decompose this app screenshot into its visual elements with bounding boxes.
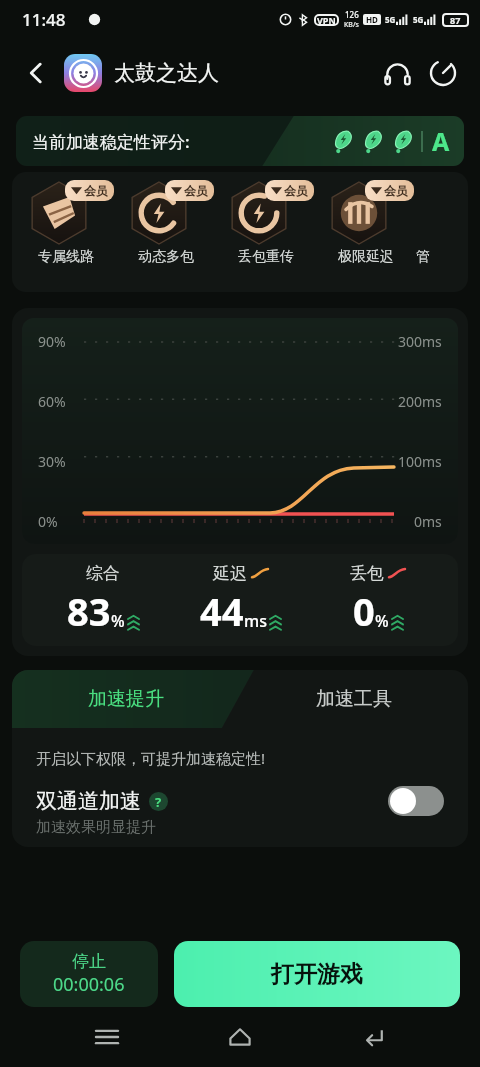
staticText: 00:00:06 <box>53 972 125 997</box>
staticText: 会员 <box>84 183 108 198</box>
staticText: A <box>432 124 450 158</box>
button[interactable]: Home <box>214 1011 266 1063</box>
button[interactable]: 双通道加速 <box>36 786 444 816</box>
button[interactable]: 打开游戏 <box>174 941 460 1007</box>
staticText: 100ms <box>398 452 442 471</box>
button[interactable]: 会员 <box>316 180 416 266</box>
staticText: 加速效果明显提升 <box>36 818 156 837</box>
staticText: 11:48 <box>22 8 66 31</box>
staticText: 丢包 <box>350 563 384 584</box>
staticText: 会员 <box>384 183 408 198</box>
button[interactable]: Back <box>14 51 58 95</box>
staticText: 延迟 <box>213 563 247 584</box>
button[interactable]: 会员 <box>16 180 116 266</box>
button[interactable]: 当前加速稳定性评分: <box>16 116 464 166</box>
staticText: 60% <box>38 392 66 411</box>
button[interactable]: 加速提升 <box>12 670 240 728</box>
button[interactable]: 会员 <box>216 180 316 266</box>
staticText: 管 <box>416 248 430 266</box>
staticText: 126 <box>345 9 359 20</box>
staticText: ? <box>155 793 162 811</box>
button[interactable]: 综合 <box>34 563 172 637</box>
staticText: 30% <box>38 452 66 471</box>
button[interactable]: Boost settings <box>420 50 466 96</box>
staticText: 44 <box>200 585 244 637</box>
staticText: 双通道加速 <box>36 788 141 814</box>
button[interactable]: 会员 <box>116 180 216 266</box>
staticText: 87 <box>450 14 461 26</box>
staticText: ms <box>244 610 267 632</box>
staticText: 会员 <box>184 183 208 198</box>
staticText: 打开游戏 <box>271 960 363 989</box>
staticText: 会员 <box>284 183 308 198</box>
staticText: VPN <box>317 14 336 26</box>
staticText: 90% <box>38 332 66 351</box>
staticText: % <box>111 610 125 632</box>
button[interactable]: 丢包 <box>309 563 446 637</box>
staticText: 停止 <box>72 951 106 972</box>
staticText: 丢包重传 <box>238 248 294 266</box>
staticText: 开启以下权限，可提升加速稳定性! <box>36 748 266 768</box>
staticText: 动态多包 <box>138 248 194 266</box>
staticText: 300ms <box>398 332 442 351</box>
button[interactable]: Audio <box>374 50 420 96</box>
staticText: 加速提升 <box>88 687 164 711</box>
staticText: KB/s <box>344 20 359 30</box>
button[interactable]: 停止 <box>20 941 158 1007</box>
staticText: 加速工具 <box>316 687 392 711</box>
staticText: HD <box>366 14 378 25</box>
staticText: 当前加速稳定性评分: <box>32 130 190 153</box>
staticText: 极限延迟 <box>338 248 394 266</box>
staticText: 太鼓之达人 <box>114 60 219 86</box>
staticText: 专属线路 <box>38 248 94 266</box>
button[interactable]: Recents <box>81 1011 133 1063</box>
staticText: 83 <box>67 585 111 637</box>
staticText: 200ms <box>398 392 442 411</box>
button[interactable]: Back <box>347 1011 399 1063</box>
button[interactable]: 延迟 <box>172 563 309 637</box>
staticText: 0 <box>353 585 375 637</box>
staticText: 5G <box>413 14 424 25</box>
staticText: 0% <box>38 512 58 531</box>
button[interactable]: Dual channel toggle <box>388 786 444 816</box>
staticText: 5G <box>385 14 396 25</box>
staticText: 0ms <box>414 512 442 531</box>
button[interactable]: 加速工具 <box>240 670 468 728</box>
staticText: % <box>375 610 389 632</box>
staticText: 综合 <box>86 563 120 584</box>
